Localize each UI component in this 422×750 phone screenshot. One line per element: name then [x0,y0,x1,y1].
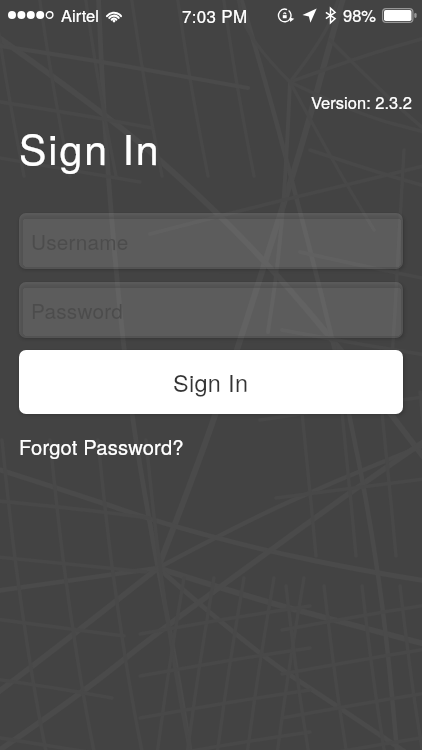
staticText: Sign In [173,365,249,399]
button[interactable]: Password [19,282,403,338]
staticText: Password [31,295,124,325]
button[interactable]: Forgot Password? [19,430,184,463]
button[interactable]: Username [19,213,403,269]
staticText: Version: 2.3.2 [0,90,412,114]
staticText: Airtel [61,3,99,27]
staticText: 7:03 PM [182,3,248,27]
button[interactable]: Sign In [19,350,403,414]
staticText: Sign In [19,118,161,177]
staticText: 98% [343,3,377,27]
staticText: Forgot Password? [19,432,184,461]
staticText: Username [31,226,129,256]
